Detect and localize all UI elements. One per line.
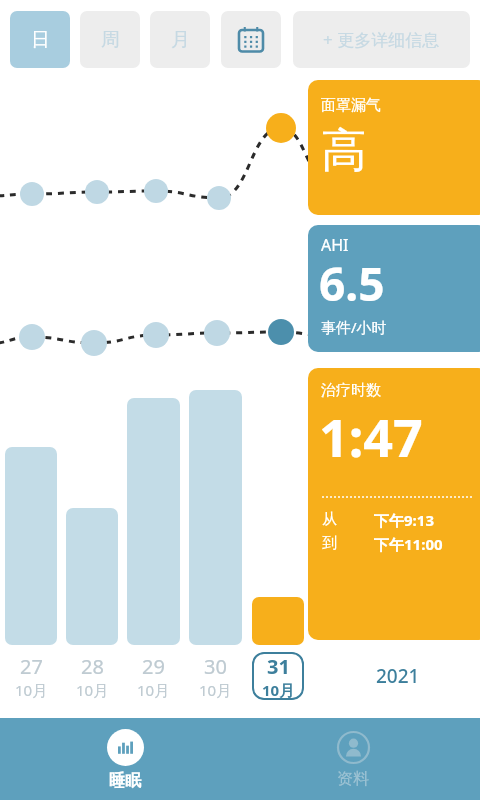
button[interactable]: 27 <box>5 652 57 700</box>
button[interactable] <box>127 398 180 645</box>
button[interactable]: AHI <box>308 225 480 352</box>
staticText: 10月 <box>262 680 295 700</box>
button[interactable]: 30 <box>189 652 242 700</box>
button[interactable] <box>5 447 57 645</box>
button[interactable]: 周 <box>80 11 140 68</box>
staticText: 到 <box>322 534 337 553</box>
button[interactable]: Calendar <box>221 11 281 68</box>
staticText: 下午9:13 <box>374 510 434 530</box>
staticText: 2021 <box>376 663 420 689</box>
staticText: AHI <box>321 234 349 256</box>
staticText: 10月 <box>199 680 232 700</box>
button[interactable] <box>252 597 304 645</box>
staticText: 10月 <box>15 680 48 700</box>
staticText: 下午11:00 <box>374 534 443 554</box>
staticText: 27 <box>20 653 43 680</box>
staticText: 从 <box>322 510 337 529</box>
staticText: 月 <box>171 28 190 52</box>
button[interactable] <box>66 508 118 645</box>
staticText: 周 <box>101 28 120 52</box>
button[interactable]: 资料 <box>313 718 393 800</box>
staticText: 治疗时数 <box>321 381 381 400</box>
staticText: 事件/小时 <box>321 317 387 337</box>
button[interactable]: 29 <box>127 652 180 700</box>
button[interactable]: 面罩漏气 <box>308 80 480 215</box>
staticText: 10月 <box>137 680 170 700</box>
staticText: 28 <box>81 653 104 680</box>
staticText: 29 <box>142 653 165 680</box>
button[interactable]: 睡眠 <box>85 718 165 800</box>
staticText: + 更多详细信息 <box>323 28 440 51</box>
staticText: 10月 <box>76 680 109 700</box>
staticText: 30 <box>204 653 227 680</box>
staticText: 日 <box>31 28 50 52</box>
staticText: 资料 <box>337 769 369 789</box>
staticText: 面罩漏气 <box>321 96 381 115</box>
button[interactable]: 治疗时数 <box>308 368 480 640</box>
staticText: 6.5 <box>319 252 385 315</box>
button[interactable]: 月 <box>150 11 210 68</box>
button[interactable]: 28 <box>66 652 118 700</box>
staticText: 31 <box>267 653 290 680</box>
button[interactable]: 日 <box>10 11 70 68</box>
button[interactable] <box>189 390 242 645</box>
staticText: 睡眠 <box>109 771 141 791</box>
staticText: 高 <box>321 122 367 180</box>
button[interactable]: + 更多详细信息 <box>293 11 470 68</box>
button[interactable]: 31 <box>252 652 304 700</box>
staticText: 1:47 <box>319 401 423 472</box>
